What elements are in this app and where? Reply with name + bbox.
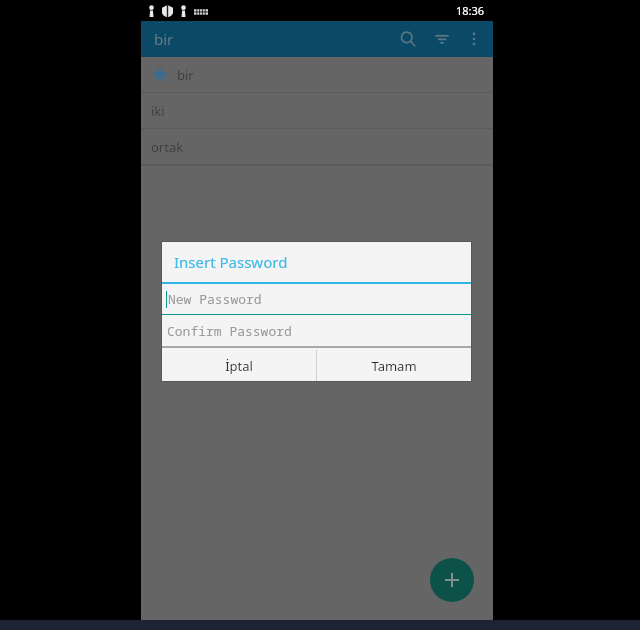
staticText: New Password: [168, 290, 262, 308]
staticText: Insert Password: [174, 252, 288, 272]
button[interactable]: İptal: [162, 350, 316, 381]
button[interactable]: Tamam: [317, 350, 471, 381]
staticText: bir: [177, 66, 194, 84]
button[interactable]: ortak: [141, 129, 493, 165]
staticText: ortak: [151, 138, 184, 156]
staticText: iki: [151, 102, 165, 120]
staticText: 18:36: [456, 3, 485, 18]
button[interactable]: bir: [141, 57, 493, 93]
button[interactable]: Search: [391, 22, 425, 56]
button[interactable]: Filter: [425, 22, 459, 56]
staticText: İptal: [225, 357, 253, 375]
staticText: Tamam: [371, 357, 417, 375]
staticText: bir: [154, 29, 174, 49]
button[interactable]: Add: [430, 558, 474, 602]
button[interactable]: More options: [459, 24, 489, 54]
staticText: Confirm Password: [167, 322, 292, 340]
